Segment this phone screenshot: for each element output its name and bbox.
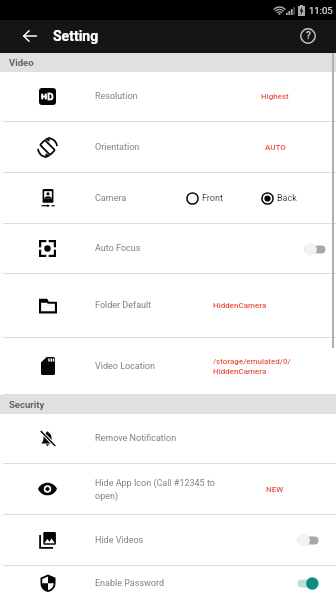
button[interactable]: Resolution (0, 72, 336, 122)
button[interactable]: Folder Default (0, 274, 336, 338)
button[interactable]: Switch on (297, 570, 323, 596)
staticText: Highest (261, 92, 289, 101)
staticText: Video Location (95, 361, 155, 372)
button[interactable]: Front (186, 192, 223, 205)
staticText: ? (306, 30, 311, 42)
button[interactable]: Navigate up (10, 20, 49, 53)
staticText: Video (9, 57, 34, 68)
staticText: Orientation (95, 142, 140, 153)
staticText: Camera (95, 193, 127, 204)
staticText: Back (277, 193, 297, 204)
staticText: /storage/emulated/0/ HiddenCamera (213, 357, 293, 375)
button[interactable]: Camera (0, 173, 336, 224)
staticText: Enable Password (95, 578, 164, 589)
staticText: AUTO (265, 143, 286, 152)
staticText: Front (202, 193, 223, 204)
staticText: Auto Focus (95, 243, 141, 254)
button[interactable]: Remove Notification (0, 414, 336, 464)
staticText: 11:05 (309, 5, 333, 16)
staticText: Hide Videos (95, 535, 144, 546)
button[interactable]: Enable Password (0, 566, 336, 600)
staticText: HiddenCamera (213, 301, 293, 310)
button[interactable]: Hide App Icon (Call #12345 to open) (0, 464, 336, 515)
button[interactable]: Help (289, 20, 327, 53)
button[interactable]: Hide Videos (0, 515, 336, 566)
staticText: Security (9, 399, 45, 410)
button[interactable]: Switch off (297, 527, 323, 553)
staticText: Resolution (95, 91, 138, 102)
button[interactable]: Orientation (0, 122, 336, 173)
button[interactable]: Switch off (304, 236, 330, 262)
staticText: Remove Notification (95, 433, 177, 444)
staticText: Setting (53, 28, 99, 44)
staticText: NEW (266, 485, 284, 494)
button[interactable]: Auto Focus (0, 224, 336, 274)
button[interactable]: Video Location (0, 338, 336, 395)
button[interactable]: Back (261, 192, 297, 205)
staticText: Hide App Icon (Call #12345 to open) (95, 478, 219, 501)
staticText: Folder Default (95, 300, 152, 311)
